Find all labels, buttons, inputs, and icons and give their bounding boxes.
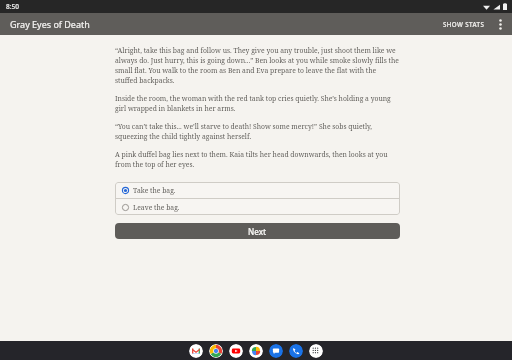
- staticText: 8:50: [6, 2, 19, 11]
- staticText: Next: [248, 226, 267, 237]
- staticText: SHOW STATS: [443, 20, 485, 28]
- button[interactable]: YouTube: [229, 344, 243, 358]
- button[interactable]: All apps: [309, 344, 323, 358]
- button[interactable]: Google Photos: [249, 344, 263, 358]
- button[interactable]: SHOW STATS: [438, 16, 490, 32]
- button[interactable]: Gmail: [189, 344, 203, 358]
- staticText: “You can’t take this... we’ll starve to …: [115, 122, 400, 141]
- staticText: “Alright, take this bag and follow us. T…: [115, 46, 400, 85]
- staticText: A pink duffel bag lies next to them. Kai…: [115, 150, 400, 169]
- button[interactable]: Leave the bag.: [115, 199, 400, 215]
- button[interactable]: Take the bag.: [115, 182, 400, 198]
- button[interactable]: Messages: [269, 344, 283, 358]
- staticText: Inside the room, the woman with the red …: [115, 94, 400, 113]
- staticText: Gray Eyes of Death: [10, 18, 90, 30]
- button[interactable]: More options: [490, 14, 510, 34]
- staticText: Leave the bag.: [133, 203, 180, 212]
- staticText: Take the bag.: [133, 186, 176, 195]
- button[interactable]: Phone: [289, 344, 303, 358]
- button[interactable]: Chrome: [209, 344, 223, 358]
- button[interactable]: Next: [115, 223, 400, 239]
